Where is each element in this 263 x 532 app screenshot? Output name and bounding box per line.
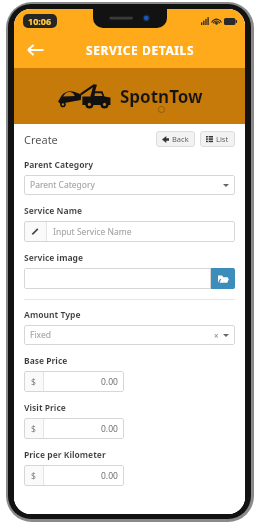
staticText: Fixed [30,329,51,341]
staticText: Back [172,134,189,144]
staticText: SpotnTow [120,85,203,108]
button[interactable]: Fixed [24,325,235,345]
staticText: 0.00 [101,470,118,482]
button[interactable]: $ [24,418,124,439]
staticText: 0.00 [101,423,118,435]
staticText: List [216,134,229,144]
staticText: Input Service Name [53,226,132,238]
staticText: 0.00 [101,376,118,388]
staticText: $ [31,423,36,435]
staticText: $ [31,470,36,482]
staticText: Visit Price [24,402,66,414]
staticText: Create [24,132,58,147]
staticText: SERVICE DETAILS [86,42,195,58]
staticText: Service Name [24,205,82,217]
button[interactable]: Back [20,35,50,65]
button[interactable] [24,268,211,289]
staticText: Price per Kilometer [24,449,106,461]
button[interactable]: Back [156,131,195,147]
staticText: Parent Category [24,159,94,171]
button[interactable]: Parent Category [24,175,235,195]
button[interactable]: $ [24,465,124,486]
staticText: Service image [24,252,83,264]
staticText: Amount Type [24,309,81,321]
button[interactable]: $ [24,371,124,392]
button[interactable]: List [200,131,235,147]
staticText: 10:06 [28,15,52,27]
staticText: $ [31,376,36,388]
button[interactable]: Input Service Name [24,221,235,242]
staticText: Base Price [24,355,68,367]
staticText: × [214,330,219,341]
button[interactable]: Browse file [211,268,235,289]
staticText: Parent Category [30,179,95,191]
